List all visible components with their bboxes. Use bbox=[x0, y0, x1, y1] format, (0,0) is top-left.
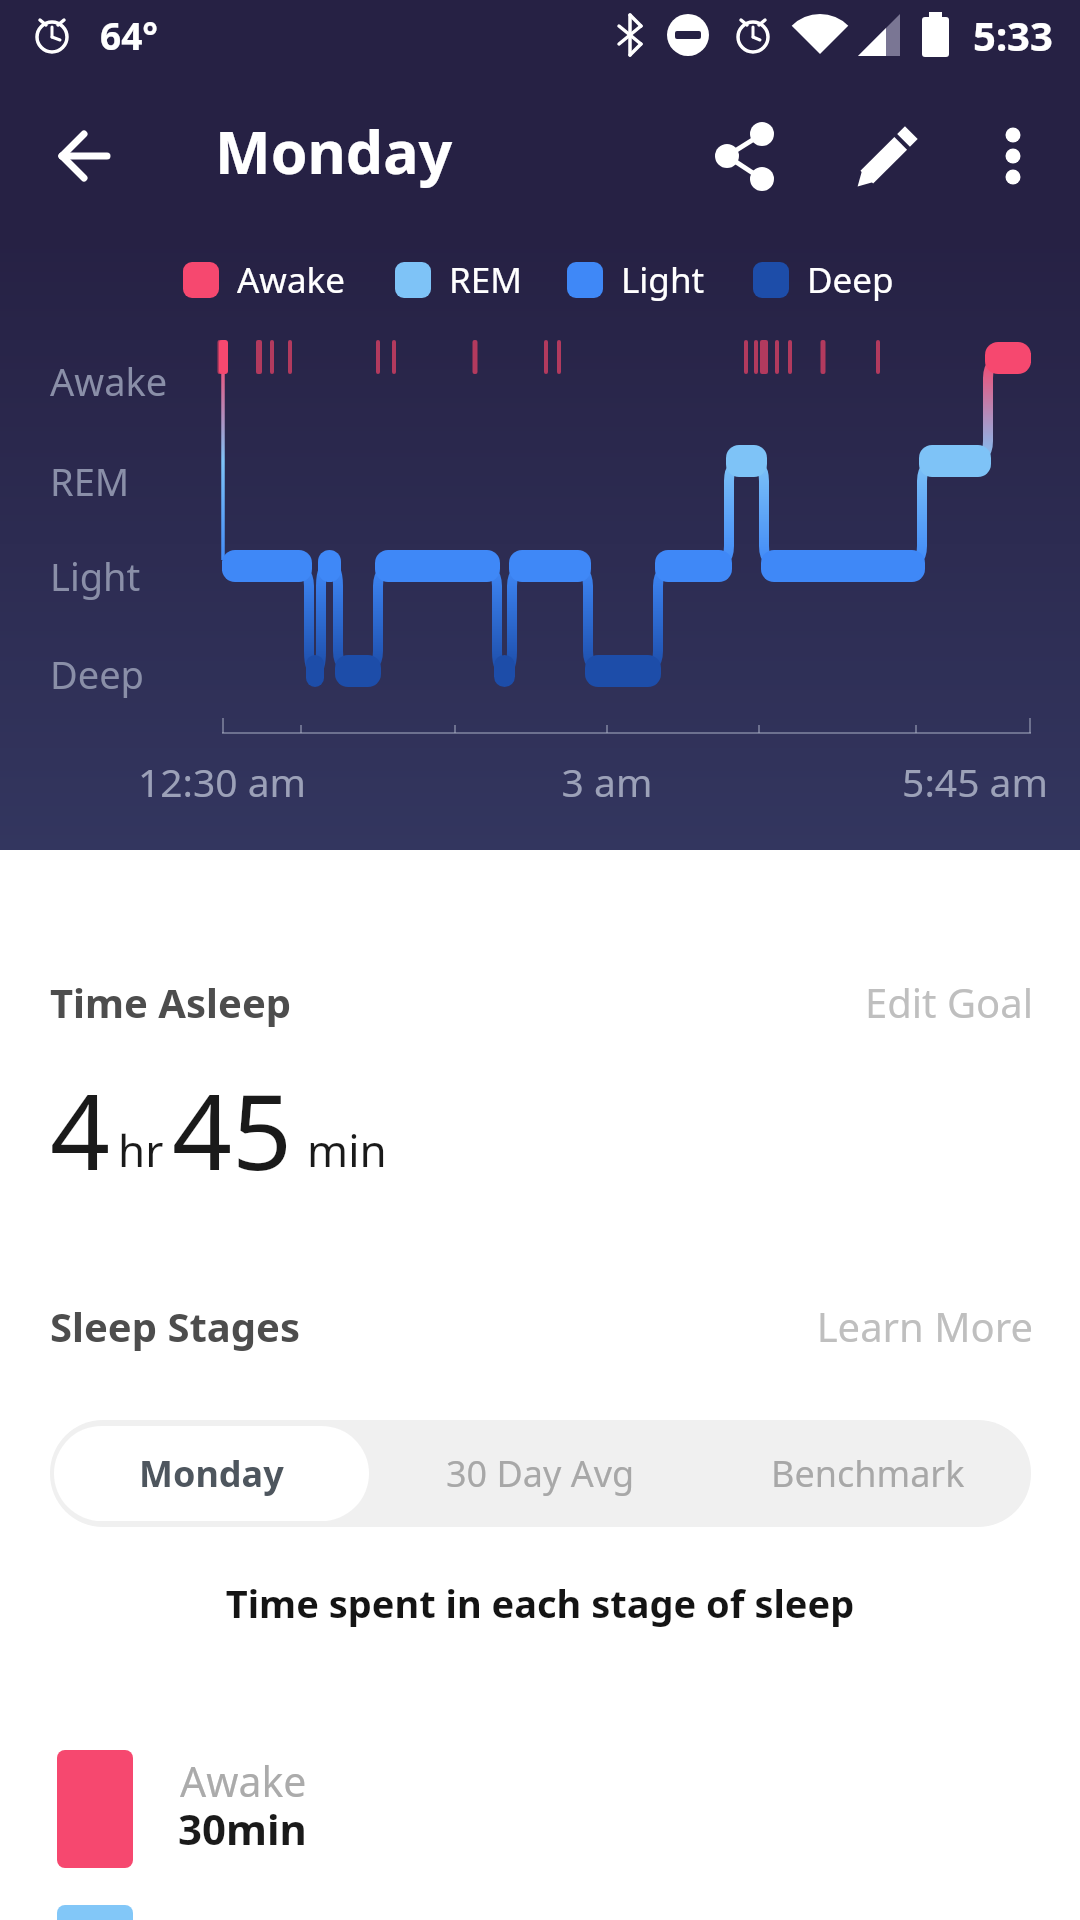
button[interactable] bbox=[40, 120, 130, 192]
staticText: 3 am bbox=[457, 755, 757, 808]
staticText: Monday bbox=[139, 1449, 284, 1498]
button[interactable]: 30 Day Avg bbox=[377, 1420, 704, 1527]
staticText: 45 bbox=[172, 1058, 293, 1201]
staticText: Deep bbox=[807, 256, 894, 304]
staticText: 30min bbox=[178, 1800, 307, 1857]
staticText: 64° bbox=[100, 10, 159, 60]
staticText: min bbox=[307, 1120, 387, 1180]
button[interactable] bbox=[845, 120, 935, 192]
staticText: Time Asleep bbox=[50, 975, 292, 1029]
staticText: Light bbox=[50, 550, 141, 602]
staticText: Awake bbox=[180, 1753, 307, 1809]
staticText: Awake bbox=[50, 355, 168, 407]
staticText: Learn More bbox=[733, 1299, 1033, 1353]
staticText: Sleep Stages bbox=[50, 1299, 300, 1353]
staticText: Awake bbox=[237, 256, 345, 304]
staticText: 5:45 am bbox=[825, 755, 1080, 808]
staticText: REM bbox=[50, 455, 130, 507]
staticText: REM bbox=[449, 256, 522, 304]
staticText: 30 Day Avg bbox=[446, 1449, 635, 1498]
staticText: Light bbox=[621, 256, 705, 304]
staticText: 5:33 bbox=[973, 8, 1053, 62]
staticText: Monday bbox=[215, 111, 453, 191]
staticText: 12:30 am bbox=[72, 755, 372, 808]
button[interactable] bbox=[980, 120, 1050, 192]
button[interactable]: Learn More bbox=[733, 1299, 1033, 1353]
staticText: 4 bbox=[50, 1058, 111, 1201]
staticText: Time spent in each stage of sleep bbox=[0, 1577, 1080, 1629]
button[interactable]: Edit Goal bbox=[733, 975, 1033, 1029]
button[interactable]: Monday bbox=[54, 1426, 369, 1521]
staticText: Deep bbox=[50, 648, 144, 700]
staticText: Benchmark bbox=[771, 1449, 965, 1498]
staticText: Edit Goal bbox=[733, 975, 1033, 1029]
staticText: hr bbox=[118, 1120, 164, 1180]
button[interactable]: Benchmark bbox=[704, 1420, 1031, 1527]
button[interactable] bbox=[700, 120, 790, 192]
